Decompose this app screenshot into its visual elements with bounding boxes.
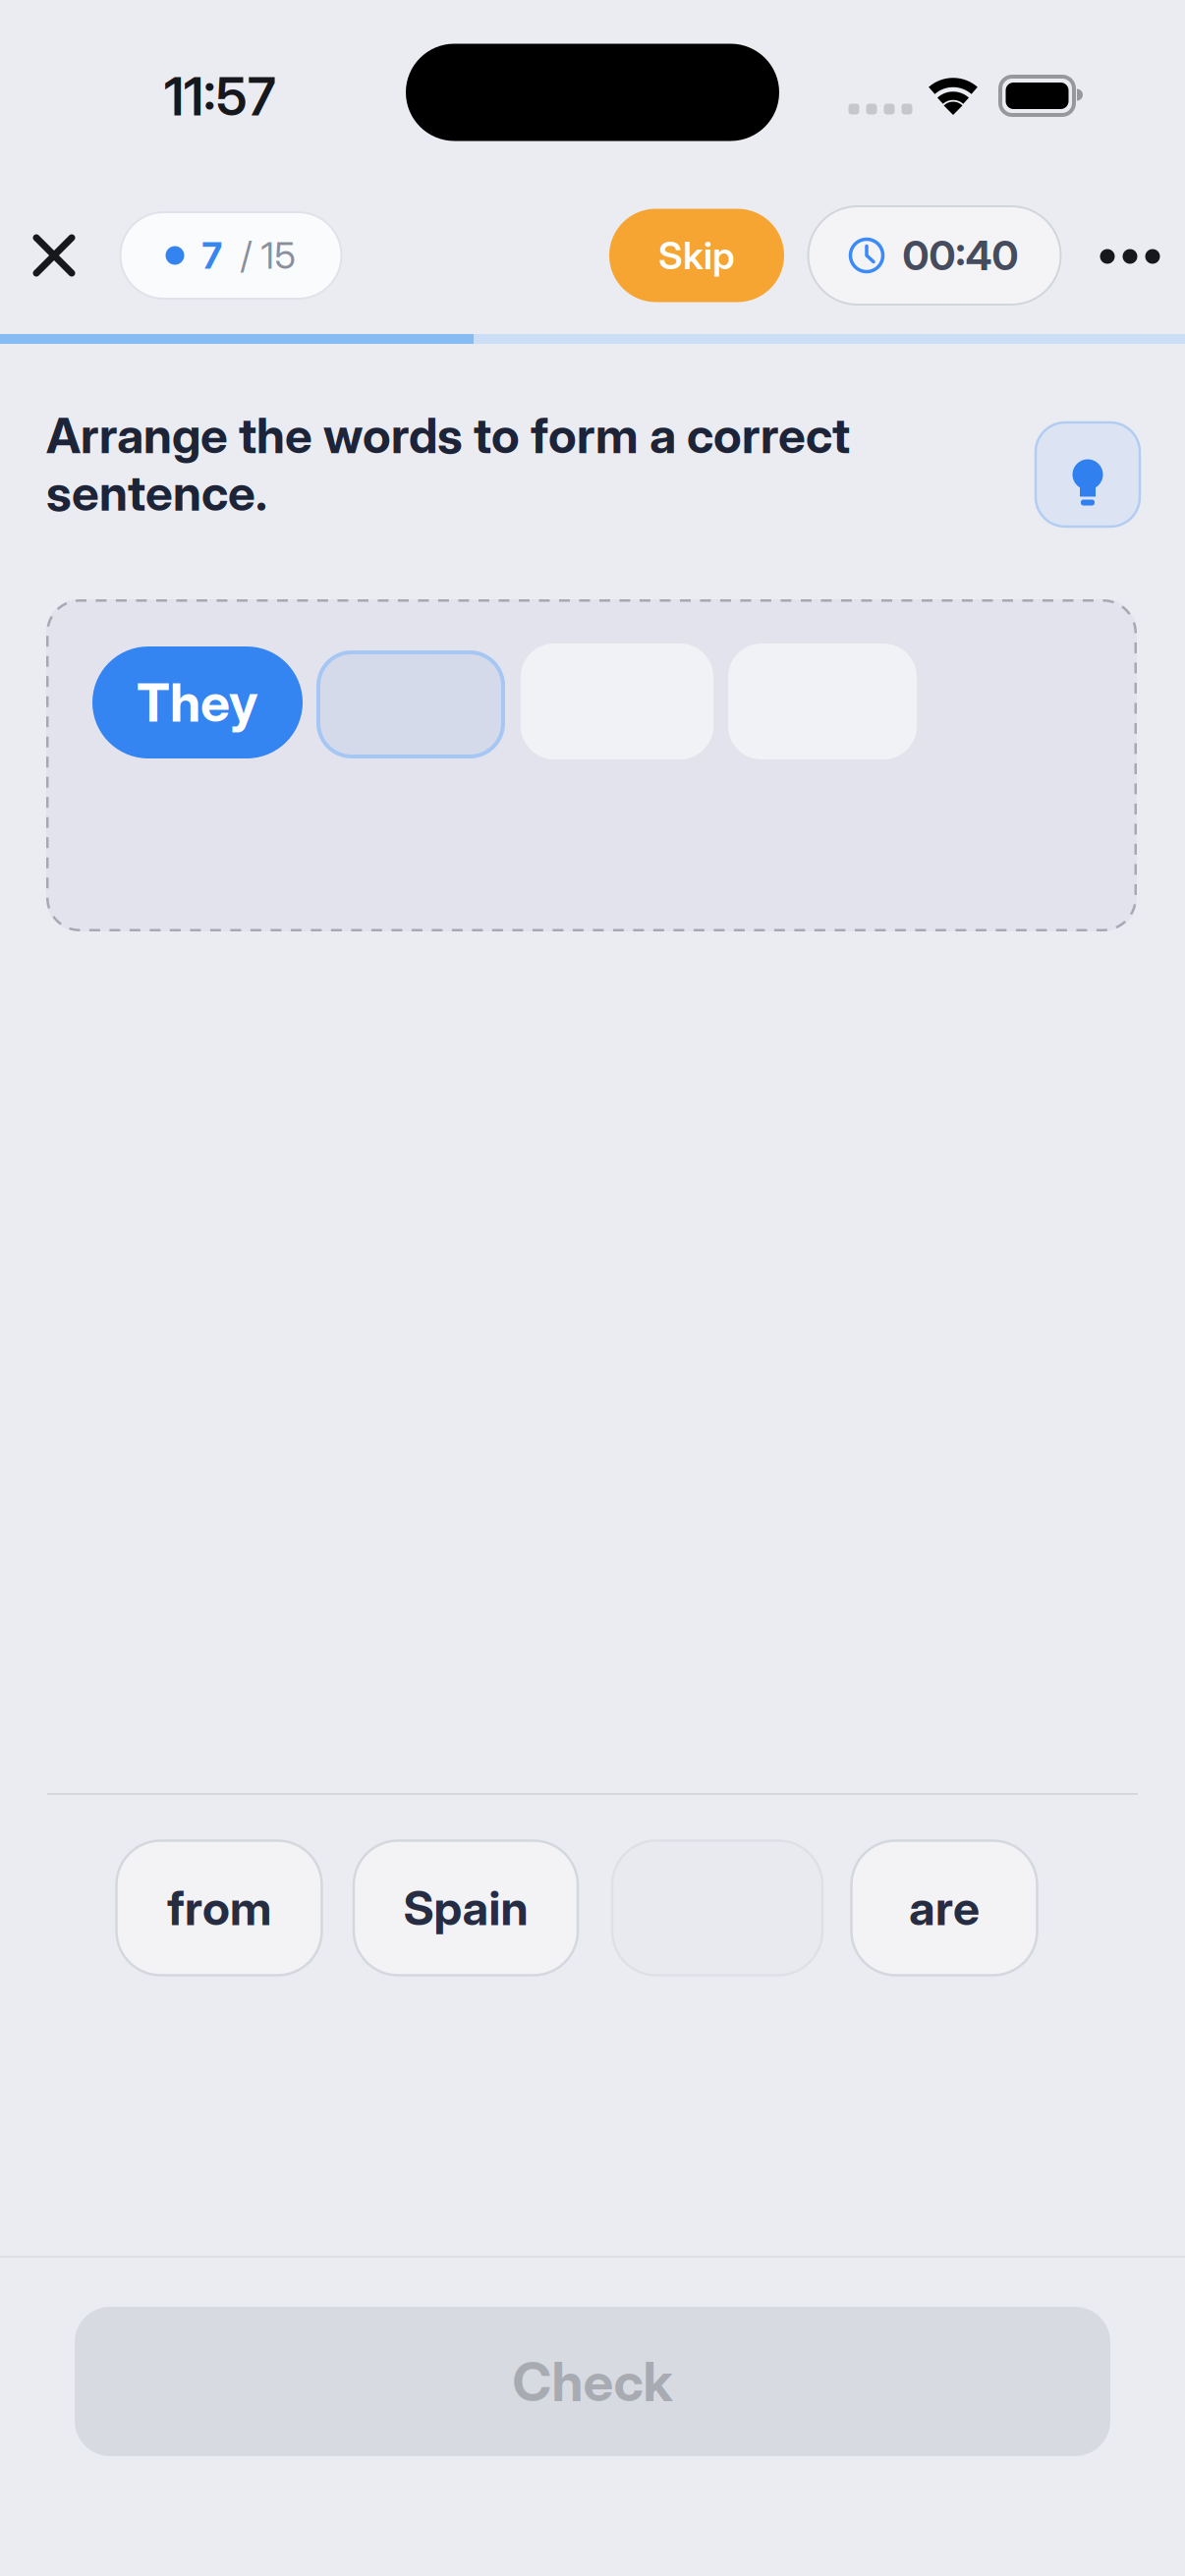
staticText: Arrange the words to form a correct sent… [46, 407, 850, 522]
staticText: They [137, 671, 258, 734]
button[interactable]: They [92, 646, 303, 758]
staticText: / 15 [240, 233, 296, 278]
button[interactable]: Hint [1036, 422, 1140, 527]
staticText: Check [512, 2349, 673, 2414]
staticText: 11:57 [164, 65, 276, 128]
staticText: Spain [403, 1879, 528, 1937]
staticText: from [167, 1879, 271, 1937]
button[interactable]: Skip [609, 209, 784, 302]
button[interactable]: Close [32, 234, 76, 277]
button[interactable]: Check [75, 2307, 1110, 2456]
button[interactable]: Spain [354, 1841, 578, 1975]
staticText: are [909, 1879, 980, 1937]
button[interactable]: are [851, 1841, 1037, 1975]
button[interactable]: from [116, 1841, 322, 1975]
staticText: 00:40 [903, 231, 1018, 280]
button[interactable]: More options [1100, 249, 1160, 264]
staticText: 7 [202, 233, 223, 278]
staticText: Skip [658, 232, 735, 278]
